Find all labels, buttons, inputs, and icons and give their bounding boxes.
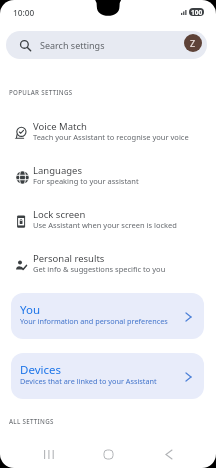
staticText: Voice Match [33,120,87,133]
button[interactable]: Devices [11,353,204,399]
staticText: Use Assistant when your screen is locked [33,220,177,230]
button[interactable]: Home [94,440,122,468]
staticText: You [20,302,40,318]
staticText: Lock screen [33,208,86,221]
staticText: Search settings [40,39,105,51]
button[interactable]: Back [155,440,183,468]
staticText: Teach your Assistant to recognise your v… [33,132,189,142]
button[interactable]: Voice Match [0,111,216,155]
button[interactable]: Lock screen [0,199,216,243]
staticText: POPULAR SETTINGS [9,88,73,96]
staticText: Personal results [33,252,105,265]
button[interactable]: Search settings [6,31,207,59]
staticText: Your information and personal preference… [20,316,168,326]
button[interactable]: You [11,293,204,339]
staticText: ALL SETTINGS [9,417,54,425]
staticText: Devices [20,362,61,378]
button[interactable]: Languages [0,155,216,199]
staticText: 10:00 [13,7,35,18]
staticText: Z [190,37,196,49]
staticText: For speaking to your assistant [33,176,139,186]
button[interactable]: Personal results [0,243,216,287]
button[interactable]: Google Account [184,34,202,52]
button[interactable]: Recent apps [34,440,62,468]
staticText: Devices that are linked to your Assistan… [20,376,157,386]
staticText: 100 [191,8,203,16]
staticText: Languages [33,164,82,177]
staticText: Get info & suggestions specific to you [33,264,166,274]
